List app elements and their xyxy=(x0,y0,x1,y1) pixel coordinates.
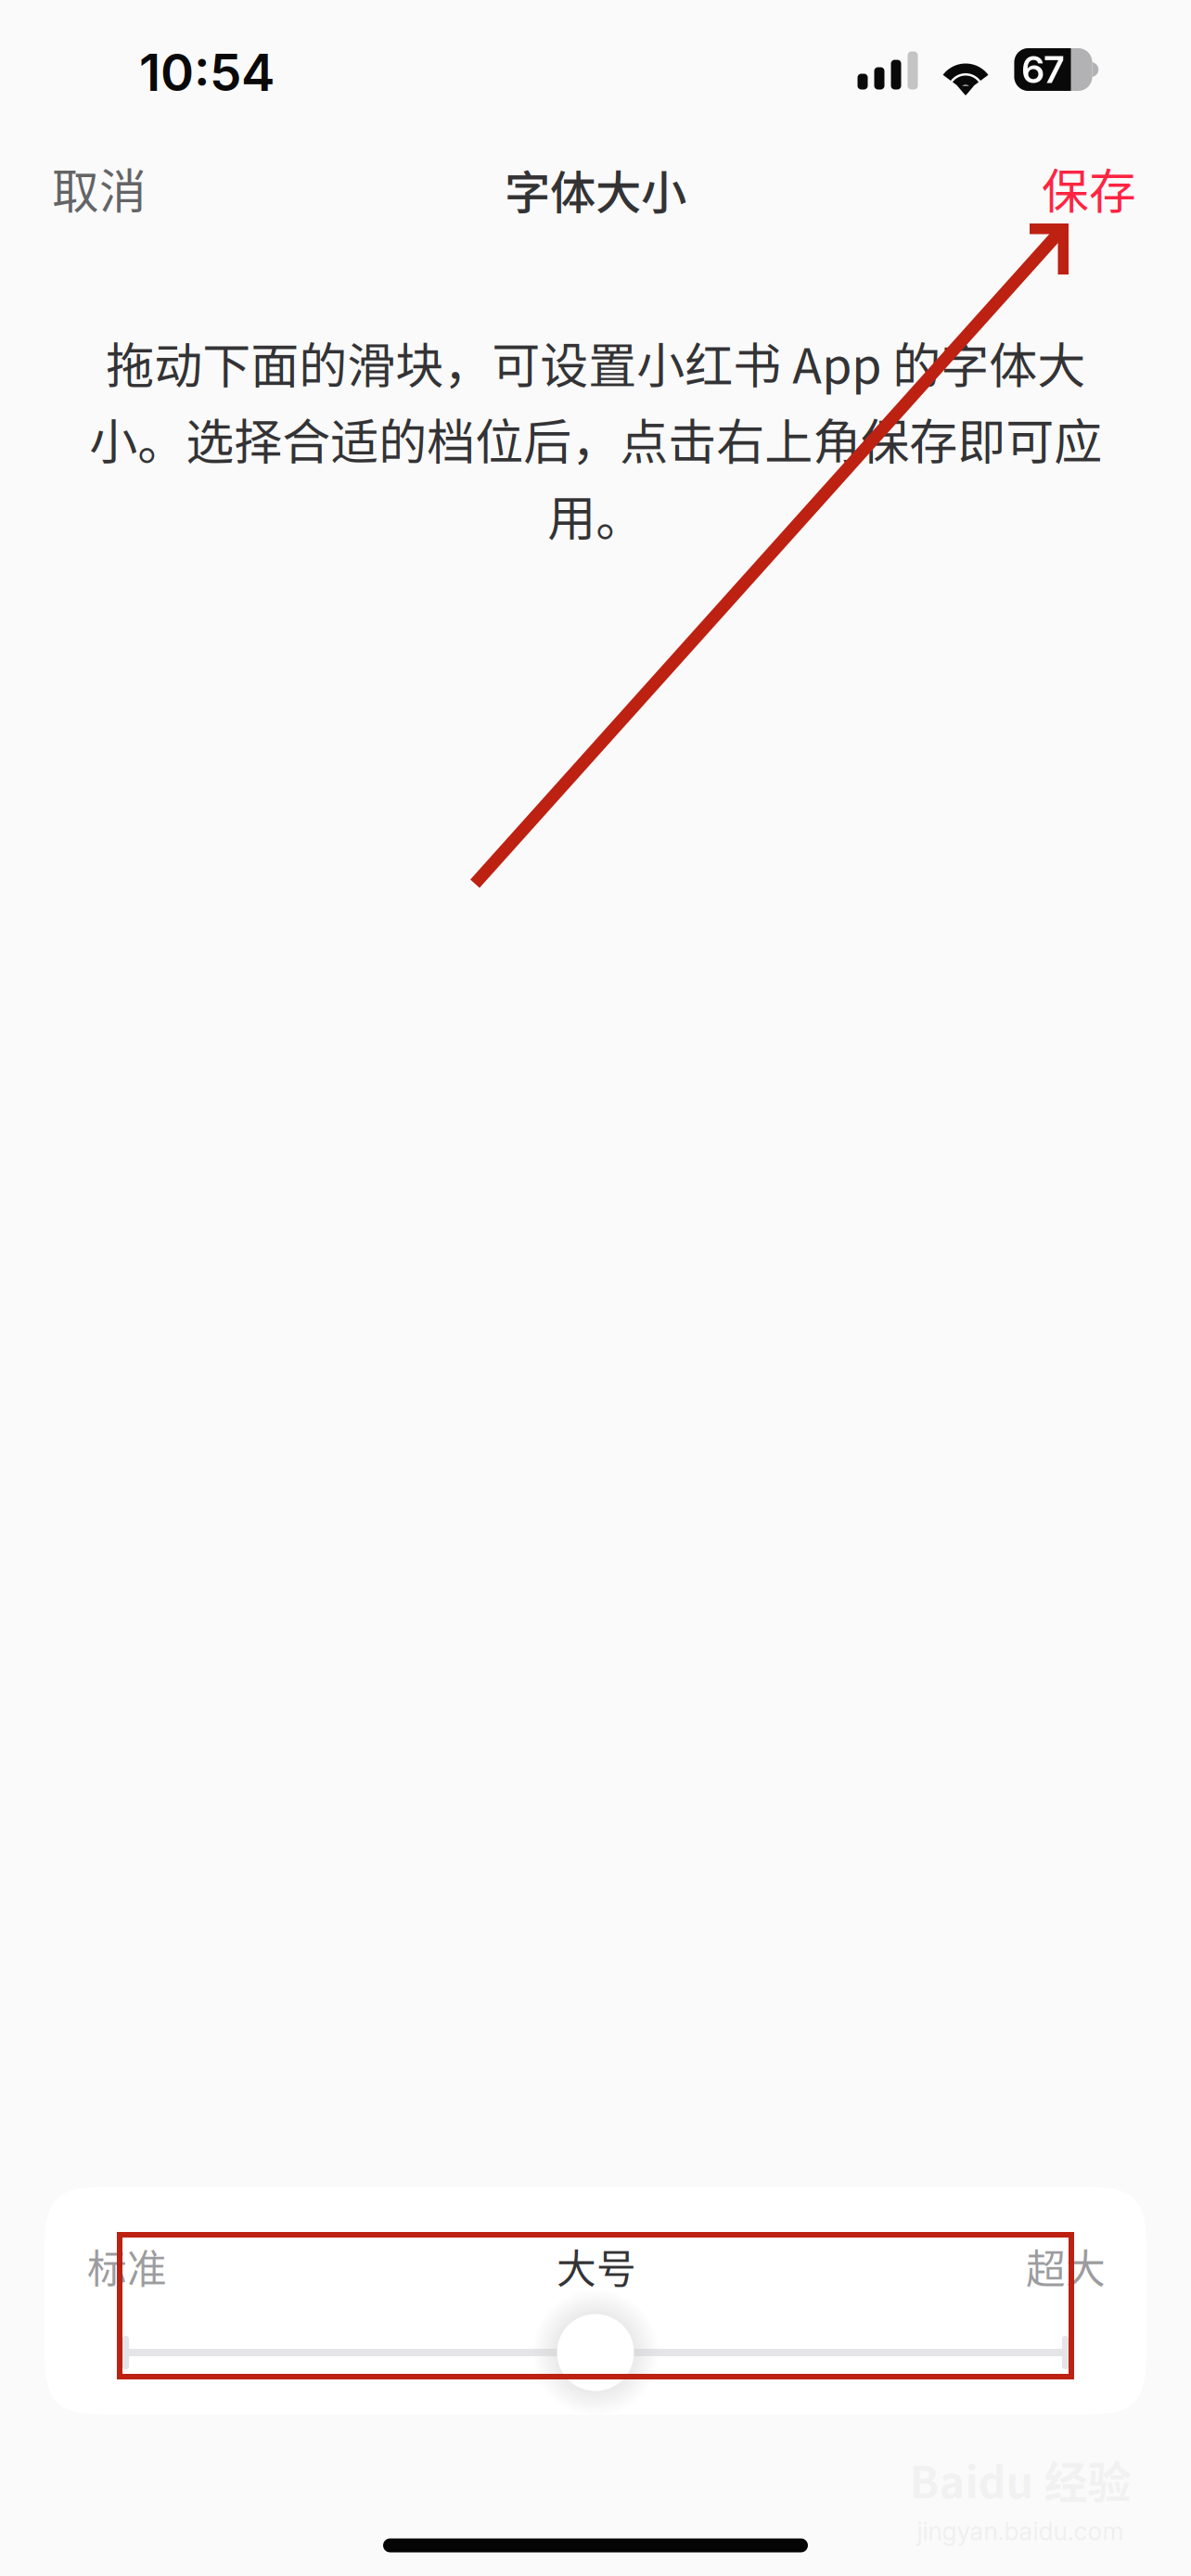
staticText: 10:54 xyxy=(139,42,275,103)
staticText: 拖动下面的滑块，可设置小红书 App 的字体大 小。选择合适的档位后，点击右上角… xyxy=(89,327,1102,550)
button[interactable]: 保存 xyxy=(1010,142,1168,235)
staticText: 保存 xyxy=(1042,154,1136,222)
staticText: jingyan.baidu.com xyxy=(917,2516,1124,2546)
staticText: 67 xyxy=(1022,47,1064,92)
staticText: 字体大小 xyxy=(505,156,686,222)
staticText: 标准 xyxy=(87,2238,167,2295)
staticText: 超大 xyxy=(1026,2238,1106,2295)
staticText: 取消 xyxy=(52,154,147,222)
staticText: Baidu 经验 xyxy=(909,2448,1131,2511)
button[interactable]: 字体大小滑块，当前：大号 xyxy=(45,2187,1146,2415)
staticText: 大号 xyxy=(557,2238,636,2295)
button[interactable]: 取消 xyxy=(20,142,178,235)
